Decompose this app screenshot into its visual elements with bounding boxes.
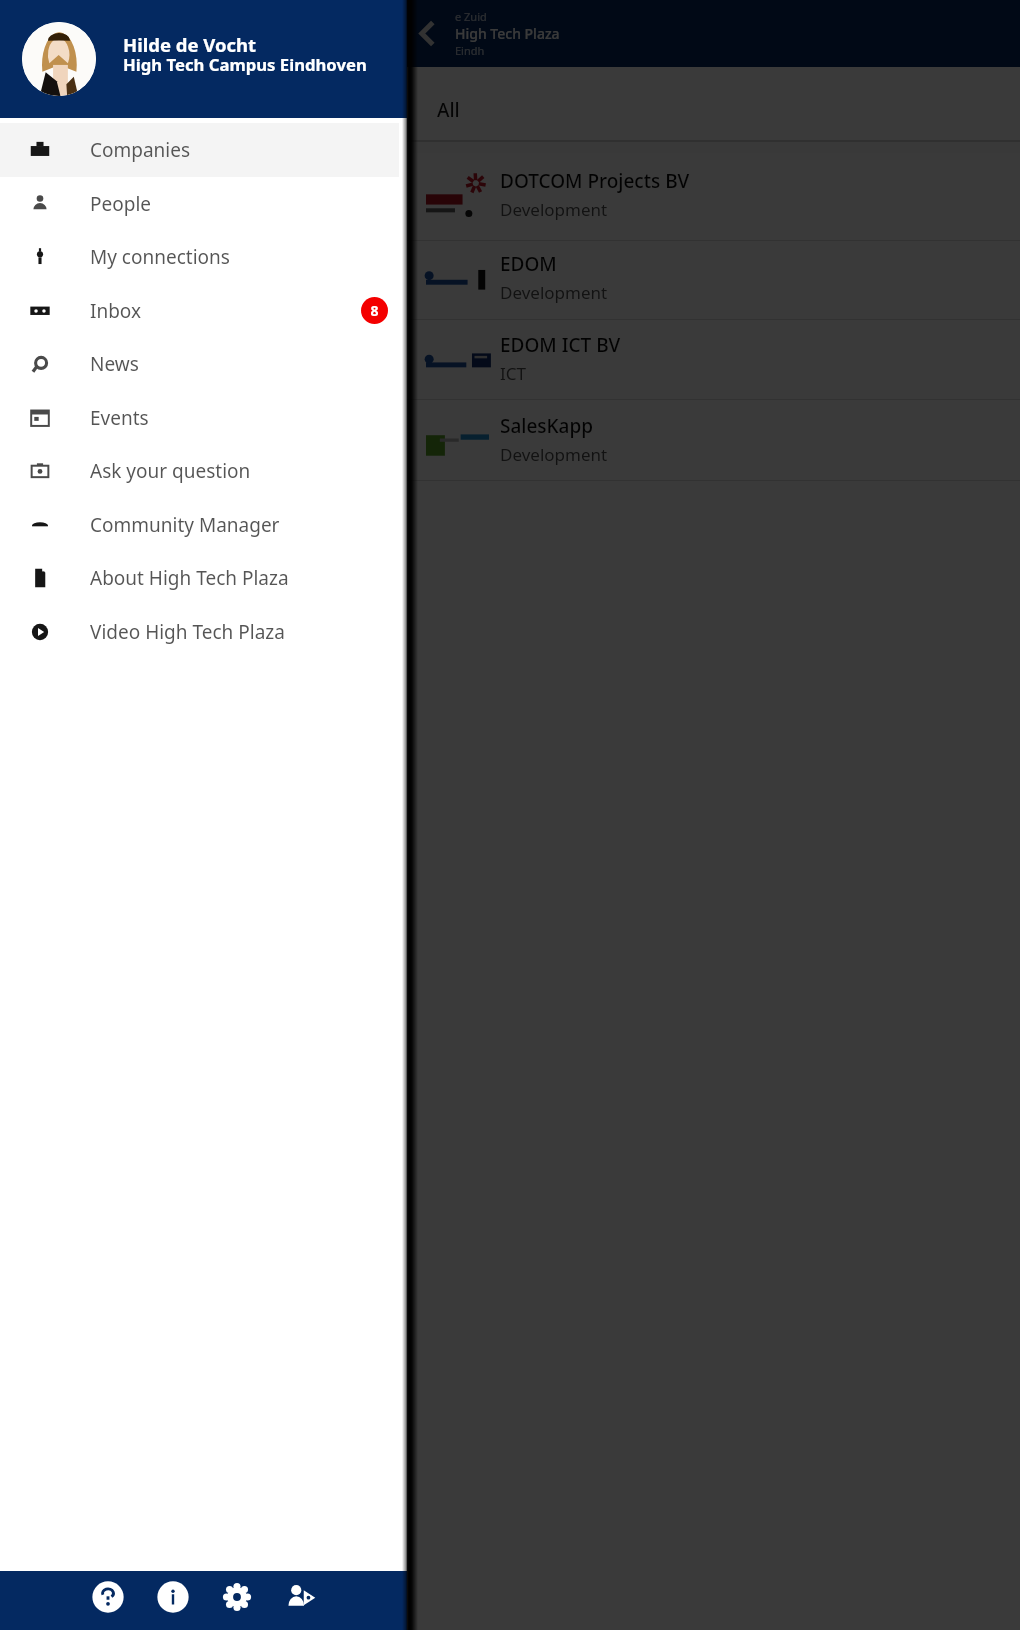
staticText: All: [437, 97, 460, 123]
staticText: Development: [500, 443, 608, 466]
button[interactable]: EDOM ICT BV: [407, 320, 1020, 400]
staticText: People: [90, 191, 152, 217]
button[interactable]: Companies: [0, 123, 407, 177]
button[interactable]: Info: [149, 1573, 197, 1621]
button[interactable]: SalesKapp: [407, 400, 1020, 481]
staticText: My connections: [90, 244, 230, 270]
staticText: e Zuid: [455, 9, 487, 24]
staticText: News: [90, 351, 139, 377]
button[interactable]: People: [0, 177, 407, 230]
staticText: SalesKapp: [500, 413, 594, 439]
button[interactable]: Settings: [213, 1573, 261, 1621]
button[interactable]: DOTCOM Projects BV: [407, 153, 1020, 241]
button[interactable]: EDOM: [407, 241, 1020, 320]
button[interactable]: Help: [84, 1573, 132, 1621]
staticText: About High Tech Plaza: [90, 565, 289, 591]
staticText: Events: [90, 405, 149, 431]
staticText: Ask your question: [90, 458, 251, 484]
button[interactable]: Close navigation drawer: [0, 0, 1020, 1630]
staticText: EDOM: [500, 251, 557, 277]
button[interactable]: Community Manager: [0, 498, 407, 551]
button[interactable]: Inbox: [0, 284, 407, 337]
staticText: Inbox: [90, 298, 142, 324]
button[interactable]: Events: [0, 391, 407, 444]
staticText: Hilde de Vocht: [123, 32, 257, 57]
button[interactable]: Log out: [277, 1573, 325, 1621]
button[interactable]: News: [0, 337, 407, 391]
button[interactable]: About High Tech Plaza: [0, 551, 407, 605]
staticText: 8: [370, 301, 379, 320]
button[interactable]: Ask your question: [0, 444, 407, 498]
button[interactable]: Back: [407, 0, 443, 67]
staticText: Video High Tech Plaza: [90, 619, 285, 645]
staticText: EDOM ICT BV: [500, 332, 621, 358]
staticText: DOTCOM Projects BV: [500, 168, 690, 194]
button[interactable]: My connections: [0, 230, 407, 284]
staticText: Eindh: [455, 43, 485, 58]
staticText: High Tech Campus Eindhoven: [123, 53, 367, 76]
staticText: Companies: [90, 137, 191, 163]
staticText: ICT: [500, 362, 526, 385]
button[interactable]: Video High Tech Plaza: [0, 605, 407, 658]
staticText: Community Manager: [90, 512, 280, 538]
staticText: Development: [500, 198, 608, 221]
staticText: Development: [500, 281, 608, 304]
staticText: High Tech Plaza: [455, 24, 560, 43]
